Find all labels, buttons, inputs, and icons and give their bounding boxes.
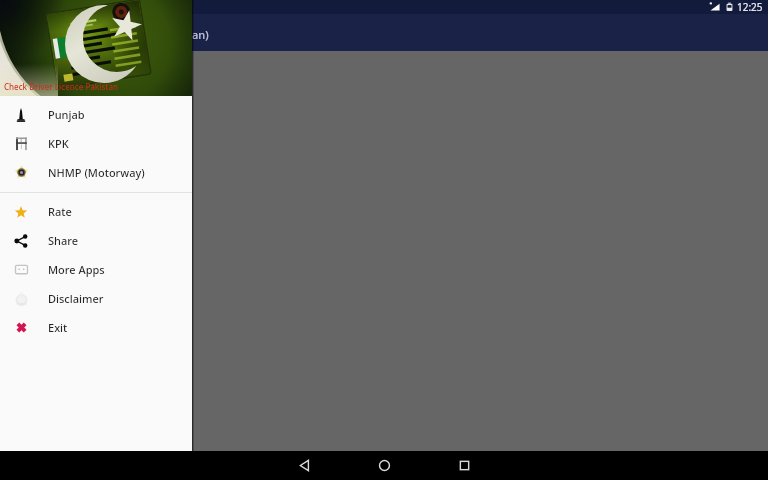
staticText: Rate	[48, 204, 72, 219]
button[interactable]: More Apps	[0, 255, 192, 284]
button[interactable]: NHMP (Motorway)	[0, 158, 192, 187]
staticText: Disclaimer	[48, 291, 104, 306]
staticText: Punjab	[48, 107, 85, 122]
staticText: NHMP (Motorway)	[48, 165, 145, 180]
staticText: 12:25	[737, 0, 763, 14]
staticText: Share	[48, 233, 78, 248]
staticText: Exit	[48, 320, 68, 335]
button[interactable]: KPK	[0, 129, 192, 158]
button[interactable]: Back	[266, 451, 342, 480]
staticText: KPK	[48, 136, 69, 151]
button[interactable]: Punjab	[0, 100, 192, 129]
staticText: Check Driver Licence Pakistan	[4, 81, 119, 92]
button[interactable]: Home	[346, 451, 422, 480]
button[interactable]: Check Driver Licence Pakistan	[0, 0, 192, 96]
button[interactable]: Share	[0, 226, 192, 255]
button[interactable]: Exit	[0, 313, 192, 342]
button[interactable]: Rate	[0, 197, 192, 226]
button[interactable]: Disclaimer	[0, 284, 192, 313]
button[interactable]: Recent apps	[426, 451, 502, 480]
staticText: Check Driver Licence (Pakistan)	[45, 27, 209, 42]
staticText: More Apps	[48, 262, 105, 277]
button[interactable]: Close navigation drawer	[0, 51, 768, 451]
button[interactable]: Open navigation drawer	[0, 14, 37, 51]
